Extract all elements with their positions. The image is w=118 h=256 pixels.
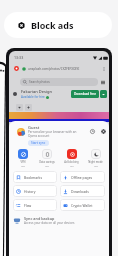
button[interactable]: Crypto Wallet [63, 199, 105, 211]
button[interactable]: Search photos [20, 78, 98, 86]
staticText: Flow [24, 203, 32, 208]
staticText: Sync and backup [24, 216, 55, 221]
staticText: Fakurian Design [21, 89, 52, 94]
staticText: Access your data on all your devices [24, 221, 75, 225]
button[interactable]: More options [102, 67, 106, 71]
staticText: On [70, 164, 74, 167]
staticText: unsplash.com/photos/CXZFEFXOI9I [28, 67, 80, 71]
staticText: Download free [74, 92, 96, 96]
button[interactable]: Start sync [31, 140, 46, 146]
staticText: 13:33 [14, 55, 24, 60]
button[interactable]: Recent tabs [90, 129, 95, 134]
staticText: Guest [28, 125, 40, 130]
staticText: Downloads [71, 189, 89, 194]
staticText: Ad blocking [64, 160, 79, 164]
staticText: Block ads [31, 19, 74, 31]
staticText: Personalize your browser with an [28, 130, 77, 134]
staticText: Offline pages [71, 175, 93, 180]
button[interactable]: Add to collection [25, 104, 32, 111]
button[interactable]: Data savings [35, 149, 58, 167]
staticText: Data savings [39, 160, 55, 164]
staticText: Opera account [28, 134, 50, 138]
button[interactable]: Settings [101, 129, 106, 134]
button[interactable]: VPN [11, 149, 34, 167]
button[interactable]: Downloads [63, 185, 105, 197]
staticText: Off [94, 164, 98, 167]
button[interactable]: Offline pages [63, 171, 105, 183]
button[interactable]: Night mode [84, 149, 107, 167]
button[interactable]: Block ads [4, 12, 112, 38]
staticText: VPN [20, 160, 26, 164]
button[interactable]: Download free [74, 90, 96, 98]
button[interactable]: More download options [100, 90, 107, 98]
staticText: History [24, 189, 36, 194]
button[interactable]: Bookmarks [16, 171, 57, 183]
staticText: Start sync [31, 141, 46, 145]
button[interactable]: Flow [16, 199, 57, 211]
staticText: Available for hire [21, 95, 45, 99]
button[interactable]: Like [16, 104, 23, 111]
button[interactable]: Guest [17, 123, 106, 140]
staticText: Bookmarks [24, 175, 43, 180]
button[interactable]: Menu [100, 79, 106, 85]
staticText: Off [45, 164, 49, 167]
button[interactable]: Ad blocking [60, 149, 83, 167]
staticText: Crypto Wallet [71, 203, 93, 208]
button[interactable]: History [16, 185, 57, 197]
button[interactable]: Sync and backup [14, 214, 105, 226]
staticText: Off [21, 164, 25, 167]
staticText: Night mode [88, 160, 103, 164]
staticText: Search photos [29, 80, 50, 84]
